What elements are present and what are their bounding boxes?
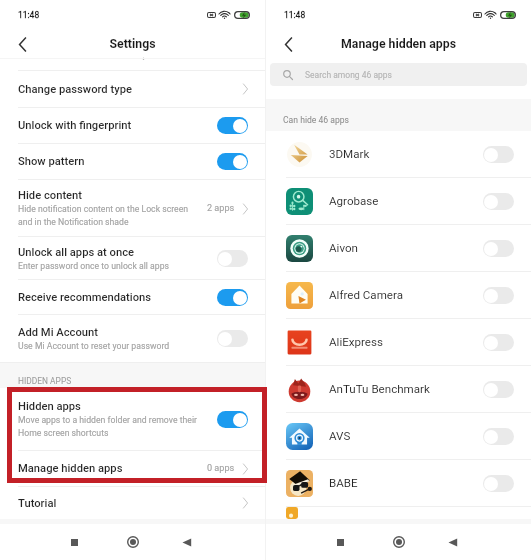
button[interactable]: Home	[122, 531, 144, 553]
button[interactable]: Recents	[329, 531, 351, 553]
staticText: Search among 46 apps	[305, 70, 392, 80]
button[interactable]: Unlock all apps at once	[0, 237, 265, 279]
button[interactable]: Toggle off	[483, 193, 514, 210]
button[interactable]: Back	[176, 531, 198, 553]
button[interactable]: Alfred Camera	[266, 272, 531, 318]
staticText: Use Mi Account to reset your password	[18, 341, 170, 351]
staticText: Agrobase	[329, 194, 483, 208]
staticText: Hide content	[18, 189, 83, 202]
button[interactable]: Toggle off	[483, 146, 514, 163]
button[interactable]: Toggle off	[483, 475, 514, 492]
button[interactable]: Toggle off	[483, 381, 514, 398]
button[interactable]: Toggle off	[483, 334, 514, 351]
button[interactable]: Toggle on	[217, 411, 248, 428]
button[interactable]: Home	[388, 531, 410, 553]
staticText: Unlock all apps at once	[18, 246, 135, 259]
button[interactable]	[266, 507, 531, 519]
staticText: Alfred Camera	[329, 288, 483, 302]
button[interactable]: Hidden apps	[0, 388, 265, 450]
button[interactable]: Toggle off	[483, 287, 514, 304]
button[interactable]: Tutorial	[0, 487, 265, 519]
staticText: AnTuTu Benchmark	[329, 382, 483, 396]
staticText: AVS	[329, 429, 483, 443]
button[interactable]: Toggle on	[217, 153, 248, 170]
button[interactable]: Agrobase	[266, 178, 531, 224]
button[interactable]: Change password type	[0, 71, 265, 107]
button[interactable]: Recents	[63, 531, 85, 553]
staticText: Tutorial	[18, 497, 57, 510]
button[interactable]: Toggle off	[217, 250, 248, 267]
button[interactable]: Toggle off	[217, 330, 248, 347]
staticText: 11:48	[18, 10, 40, 20]
button[interactable]: Search among 46 apps	[270, 63, 527, 86]
staticText: Receive recommendations	[18, 291, 152, 304]
button[interactable]: Toggle off	[483, 240, 514, 257]
button[interactable]: AVS	[266, 413, 531, 459]
button[interactable]: Back	[8, 30, 36, 58]
staticText: 2 apps	[207, 203, 235, 214]
staticText: Change password type	[18, 83, 132, 96]
staticText: 11:48	[284, 10, 306, 20]
staticText: Hidden apps	[18, 400, 81, 413]
button[interactable]: Unlock with fingerprint	[0, 108, 265, 143]
button[interactable]: Aivon	[266, 225, 531, 271]
staticText: Move apps to a hidden folder and remove …	[18, 415, 197, 438]
button[interactable]: Receive recommendations	[0, 280, 265, 314]
staticText: Hide notification content on the Lock sc…	[18, 204, 189, 227]
staticText: BABE	[329, 476, 483, 490]
button[interactable]: Back	[274, 30, 302, 58]
button[interactable]: Add Mi Account	[0, 315, 265, 362]
button[interactable]: Hide content	[0, 180, 265, 236]
button[interactable]: BABE	[266, 460, 531, 506]
staticText: Can hide 46 apps	[283, 115, 350, 125]
staticText: Manage hidden apps	[18, 462, 123, 475]
button[interactable]: Toggle on	[217, 117, 248, 134]
button[interactable]: Show pattern	[0, 144, 265, 179]
staticText: Show pattern	[18, 155, 85, 168]
staticText: HIDDEN APPS	[18, 376, 72, 386]
staticText: 0 apps	[207, 463, 235, 474]
staticText: AliExpress	[329, 335, 483, 349]
button[interactable]: Back	[442, 531, 464, 553]
button[interactable]: Manage hidden apps	[0, 451, 265, 486]
staticText: Aivon	[329, 241, 483, 255]
button[interactable]: Toggle off	[483, 428, 514, 445]
button[interactable]: Toggle on	[217, 289, 248, 306]
staticText: Manage hidden apps	[341, 37, 456, 51]
staticText: Settings	[109, 37, 156, 51]
staticText: 3DMark	[329, 147, 483, 161]
button[interactable]: AnTuTu Benchmark	[266, 366, 531, 412]
staticText: Add Mi Account	[18, 326, 99, 339]
staticText: Unlock with fingerprint	[18, 119, 132, 132]
button[interactable]: AliExpress	[266, 319, 531, 365]
button[interactable]: 3DMark	[266, 131, 531, 177]
staticText: Enter password once to unlock all apps	[18, 261, 170, 271]
